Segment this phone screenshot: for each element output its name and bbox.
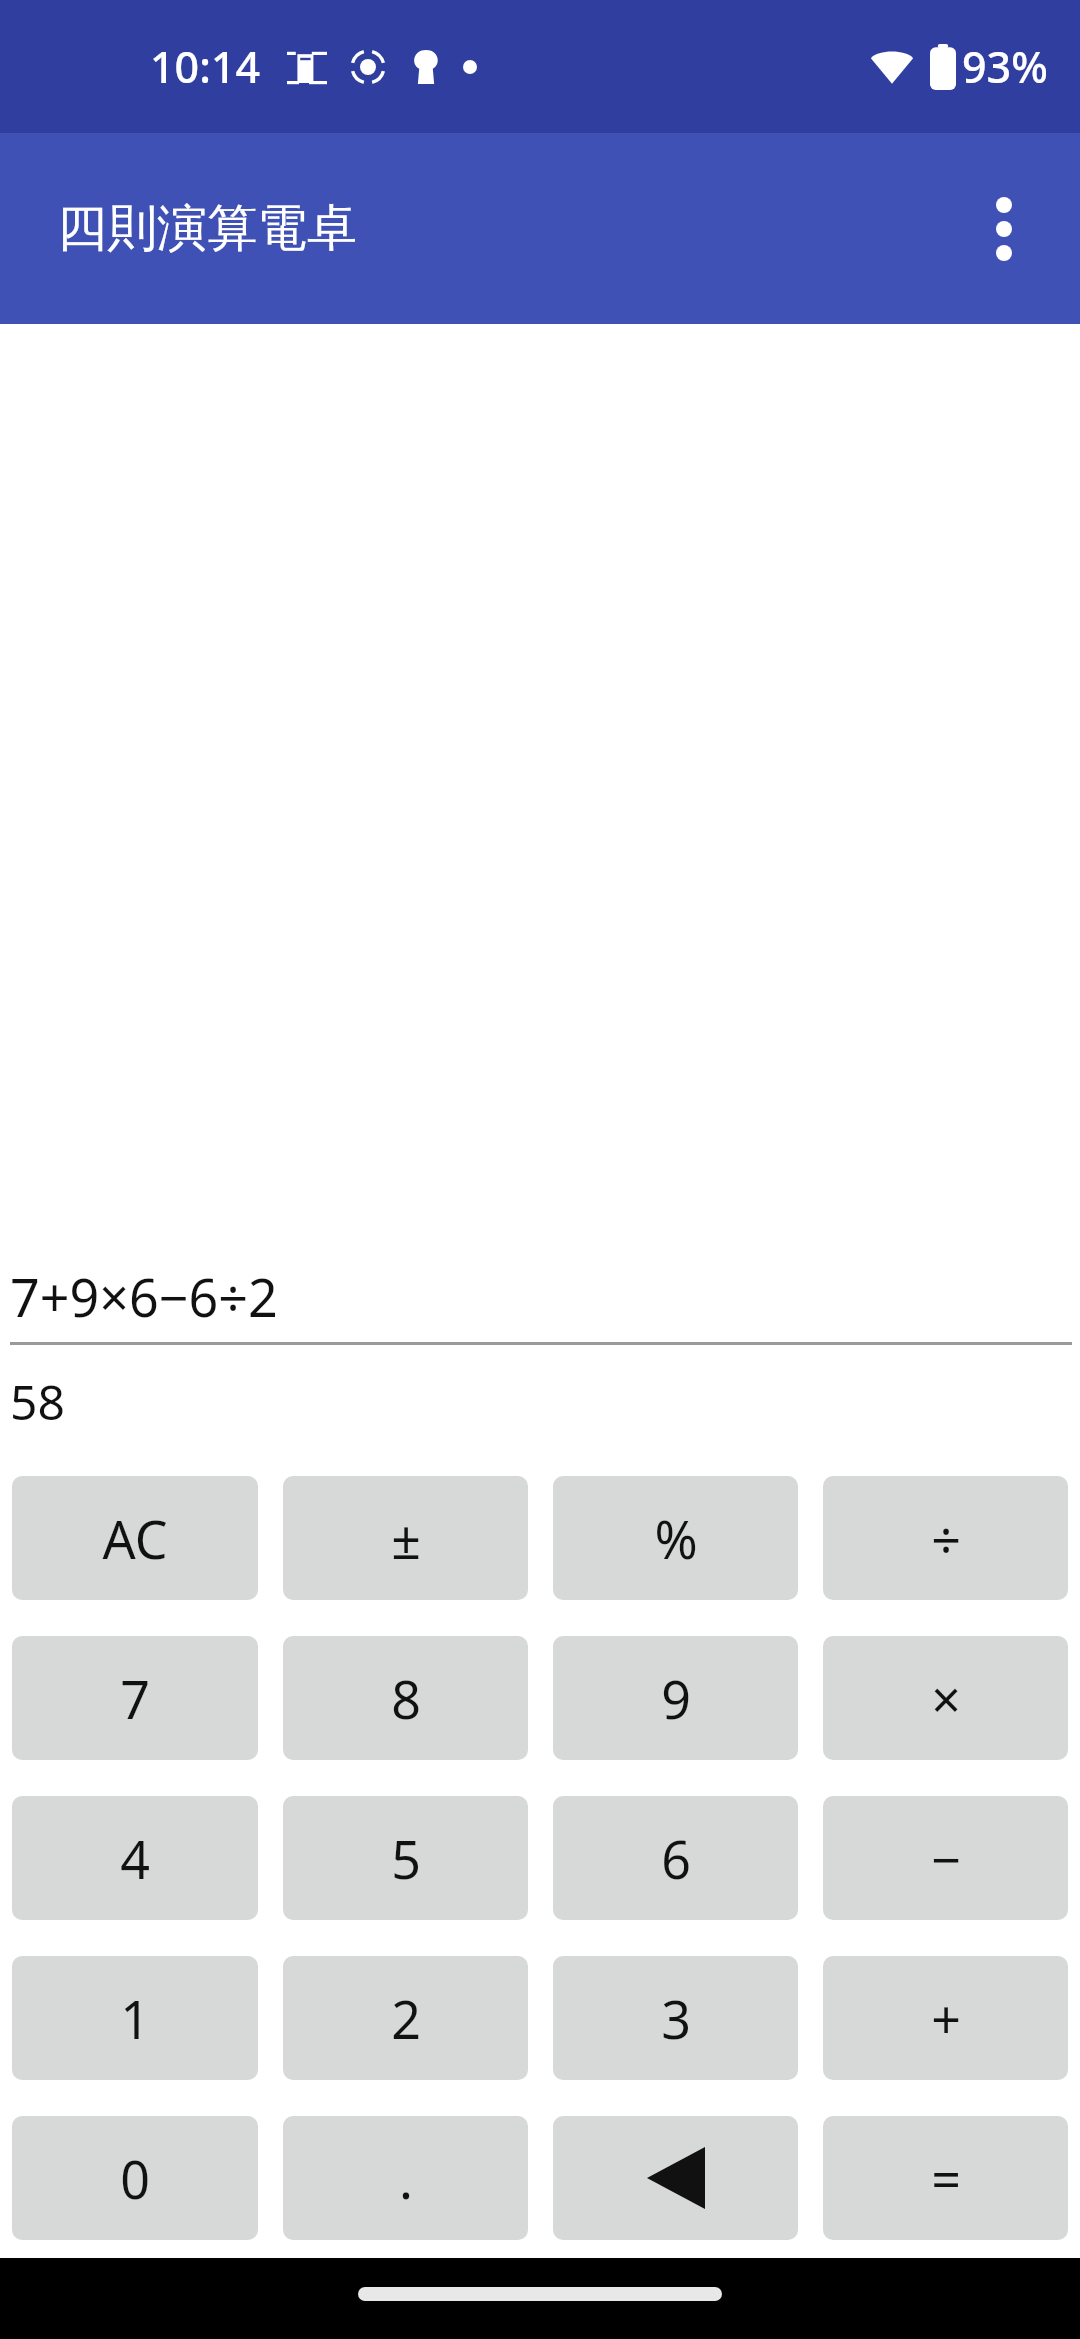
staticText: 1	[120, 1983, 150, 2054]
button[interactable]: 9	[553, 1636, 798, 1760]
staticText: ±	[391, 1503, 421, 1574]
button[interactable]: =	[823, 2116, 1068, 2240]
staticText: ÷	[931, 1503, 961, 1574]
staticText: −	[931, 1823, 961, 1894]
staticText: 4	[120, 1823, 150, 1894]
staticText: =	[931, 2143, 961, 2214]
staticText: .	[399, 2143, 413, 2214]
staticText: 5	[391, 1823, 421, 1894]
staticText: 8	[391, 1663, 421, 1734]
staticText: AC	[102, 1503, 168, 1574]
staticText: 6	[661, 1823, 691, 1894]
button[interactable]: +	[823, 1956, 1068, 2080]
staticText: ×	[931, 1663, 961, 1734]
button[interactable]: Backspace	[553, 2116, 798, 2240]
button[interactable]: 3	[553, 1956, 798, 2080]
button[interactable]: ±	[283, 1476, 528, 1600]
staticText: %	[654, 1503, 698, 1574]
staticText: 7	[120, 1663, 150, 1734]
button[interactable]: 0	[12, 2116, 258, 2240]
staticText: 四則演算電卓	[57, 197, 357, 260]
button[interactable]: 4	[12, 1796, 258, 1920]
staticText: 0	[120, 2143, 150, 2214]
button[interactable]: −	[823, 1796, 1068, 1920]
staticText: 9	[661, 1663, 691, 1734]
staticText: 10:14	[150, 37, 261, 96]
button[interactable]: 5	[283, 1796, 528, 1920]
button[interactable]: 8	[283, 1636, 528, 1760]
button[interactable]: 6	[553, 1796, 798, 1920]
staticText: 2	[391, 1983, 421, 2054]
staticText: 58	[10, 1369, 65, 1434]
staticText: 3	[661, 1983, 691, 2054]
button[interactable]: ÷	[823, 1476, 1068, 1600]
staticText: +	[931, 1983, 961, 2054]
button[interactable]: 2	[283, 1956, 528, 2080]
button[interactable]: %	[553, 1476, 798, 1600]
button[interactable]: 1	[12, 1956, 258, 2080]
button[interactable]: More options	[956, 181, 1052, 277]
staticText: 7+9×6−6÷2	[10, 1261, 278, 1332]
button[interactable]: 7	[12, 1636, 258, 1760]
button[interactable]: .	[283, 2116, 528, 2240]
button[interactable]: ×	[823, 1636, 1068, 1760]
button[interactable]: AC	[12, 1476, 258, 1600]
staticText: 93%	[962, 37, 1048, 96]
